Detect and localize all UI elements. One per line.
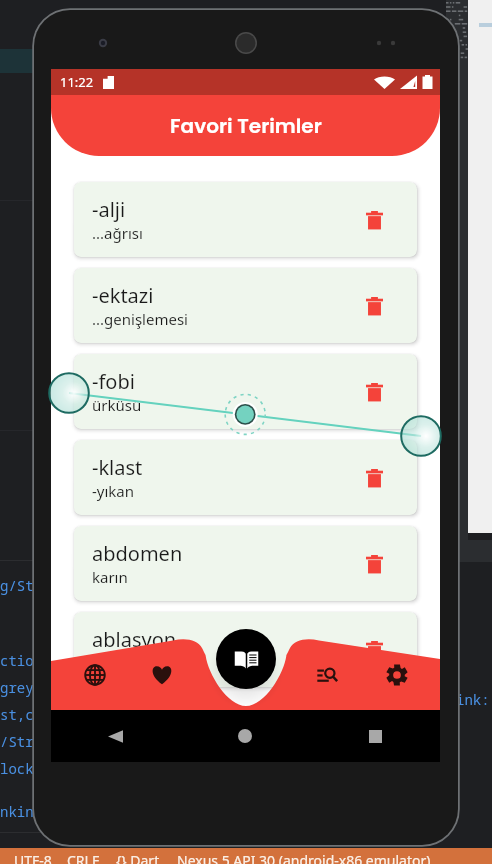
button[interactable]: -ektazi — [74, 268, 417, 343]
staticText: ürküsü — [92, 395, 142, 415]
button[interactable]: Ayarlar — [373, 651, 421, 699]
button[interactable]: Sil — [360, 206, 388, 234]
staticText: -yıkan — [92, 481, 135, 501]
staticText: -alji — [92, 196, 126, 223]
button[interactable]: Sil — [360, 292, 388, 320]
button[interactable]: -klast — [74, 440, 417, 515]
staticText: abdomen — [92, 540, 183, 567]
staticText: ink: — [456, 690, 490, 709]
button[interactable]: -fobi — [74, 354, 417, 429]
button[interactable]: Sözlük — [216, 629, 276, 689]
button[interactable]: Sil — [360, 636, 388, 664]
staticText: grey — [0, 678, 34, 697]
staticText: ...ağrısı — [92, 223, 143, 243]
button[interactable]: ablasyon — [74, 612, 417, 687]
staticText: Nexus 5 API 30 (android-x86 emulator) — [177, 851, 431, 864]
button[interactable]: -alji — [74, 182, 417, 257]
staticText: {} Dart — [116, 851, 160, 864]
staticText: CRLF — [67, 851, 100, 864]
staticText: st,c — [0, 705, 34, 724]
staticText: -klast — [92, 454, 143, 481]
staticText: g/St — [0, 576, 34, 595]
staticText: UTF-8 — [14, 851, 52, 864]
button[interactable]: abdomen — [74, 526, 417, 601]
staticText: -ektazi — [92, 282, 154, 309]
staticText: karın — [92, 567, 128, 587]
staticText: ayrılma — [92, 653, 145, 673]
staticText: -fobi — [92, 368, 135, 395]
staticText: lock — [0, 759, 34, 778]
button[interactable]: Sil — [360, 550, 388, 578]
staticText: ablasyon — [92, 626, 177, 653]
button[interactable]: Sil — [360, 378, 388, 406]
staticText: Favori Terimler — [170, 112, 322, 140]
staticText: 11:22 — [60, 73, 94, 91]
button[interactable]: Diller — [71, 651, 119, 699]
staticText: /Str — [0, 732, 34, 751]
button[interactable]: Favoriler — [138, 651, 186, 699]
button[interactable]: Sil — [360, 464, 388, 492]
button[interactable]: Ara — [303, 651, 351, 699]
staticText: nkin — [0, 802, 34, 821]
staticText: ...genişlemesi — [92, 309, 188, 329]
staticText: ctio — [0, 651, 34, 670]
